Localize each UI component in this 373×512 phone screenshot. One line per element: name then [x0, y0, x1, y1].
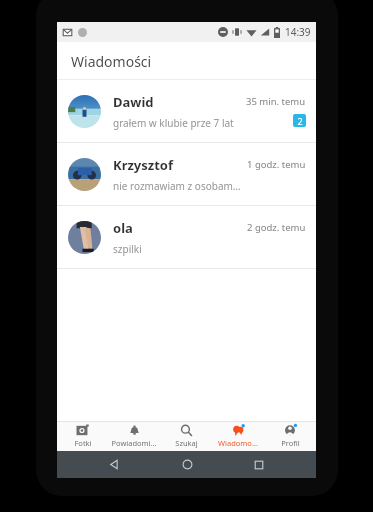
button[interactable]: Fotki — [57, 421, 108, 451]
button[interactable]: Back — [99, 451, 129, 478]
button[interactable]: Szukaj — [160, 421, 212, 451]
staticText: 14:39 — [285, 25, 311, 39]
staticText: grałem w klubie prze 7 lat — [113, 116, 234, 130]
staticText: szpilki — [113, 242, 142, 256]
button[interactable]: Profil — [264, 421, 316, 451]
staticText: 2 godz. temu — [247, 221, 306, 234]
button[interactable]: Recents — [244, 451, 274, 478]
staticText: Szukaj — [175, 438, 198, 448]
staticText: ola — [113, 219, 133, 237]
button[interactable]: Wiadomo... — [212, 421, 264, 451]
staticText: 2 — [297, 115, 303, 127]
staticText: Profil — [281, 438, 300, 448]
staticText: Krzysztof — [113, 156, 174, 174]
button[interactable]: Krzysztof — [57, 143, 316, 205]
button[interactable]: ola — [57, 206, 316, 268]
button[interactable]: Dawid — [57, 80, 316, 142]
staticText: nie rozmawiam z osobami bez zdjęć — [113, 179, 241, 193]
button[interactable]: Powiadomi... — [108, 421, 160, 451]
staticText: 35 min. temu — [246, 95, 306, 108]
staticText: Powiadomi... — [111, 438, 157, 448]
staticText: Wiadomości — [71, 52, 152, 71]
staticText: Fotki — [74, 438, 92, 448]
button[interactable]: Home — [172, 451, 202, 478]
staticText: Wiadomo... — [218, 438, 258, 448]
staticText: 1 godz. temu — [247, 158, 306, 171]
staticText: Dawid — [113, 93, 154, 111]
